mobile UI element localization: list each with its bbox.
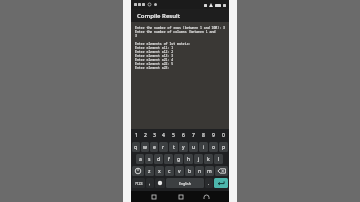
button[interactable]: 7 <box>188 131 198 140</box>
staticText: b <box>188 168 192 175</box>
button[interactable]: 1 <box>132 131 141 140</box>
button[interactable]: 2 <box>141 131 150 140</box>
button[interactable]: j <box>194 154 203 164</box>
staticText: Enter element a11: 1 <box>135 46 174 50</box>
staticText: o <box>212 144 216 151</box>
button[interactable]: t <box>169 142 178 152</box>
staticText: Compile Result <box>137 12 180 20</box>
button[interactable]: Home <box>176 192 185 201</box>
button[interactable]: z <box>145 166 154 176</box>
button[interactable]: p <box>219 142 228 152</box>
staticText: 8 <box>202 132 205 139</box>
staticText: k <box>207 156 210 163</box>
button[interactable]: x <box>155 166 164 176</box>
staticText: e <box>153 144 156 151</box>
staticText: Enter element a23: <box>135 66 170 70</box>
staticText: 7 <box>192 132 195 139</box>
button[interactable]: 5 <box>168 131 178 140</box>
button[interactable]: m <box>205 166 214 176</box>
staticText: Enter the number of columns (between 1 a… <box>135 30 226 34</box>
staticText: s <box>148 156 151 163</box>
staticText: z <box>148 168 151 175</box>
staticText: 3 <box>135 34 137 38</box>
button[interactable]: w <box>141 142 149 152</box>
button[interactable]: i <box>199 142 208 152</box>
button[interactable]: 9 <box>208 131 218 140</box>
staticText: , <box>149 180 151 187</box>
button[interactable]: r <box>159 142 168 152</box>
button[interactable]: Voice input <box>155 178 165 188</box>
button[interactable]: 0 <box>218 131 228 140</box>
button[interactable]: q <box>132 142 140 152</box>
staticText: j <box>198 156 200 163</box>
staticText: . <box>208 180 210 187</box>
staticText: Enter the number of rows (between 1 and … <box>135 26 225 30</box>
button[interactable]: Compile Result <box>131 9 229 22</box>
staticText: 4 <box>162 132 165 139</box>
staticText: Enter element a21: 4 <box>135 58 174 62</box>
staticText: u <box>192 144 196 151</box>
button[interactable]: Recent apps <box>202 192 211 201</box>
button[interactable]: v <box>175 166 184 176</box>
staticText: 5 <box>172 132 175 139</box>
staticText: g <box>177 156 181 163</box>
staticText: Enter element a22: 5 <box>135 62 174 66</box>
button[interactable]: English <box>166 178 204 188</box>
staticText: 9 <box>212 132 215 139</box>
staticText: 3 <box>153 132 156 139</box>
button[interactable]: a <box>136 154 144 164</box>
button[interactable]: Back <box>149 192 158 201</box>
staticText: Enter element a12: 2 <box>135 50 174 54</box>
staticText: y <box>182 144 185 151</box>
button[interactable]: . <box>205 178 213 188</box>
button[interactable]: Enter the number of rows (between 1 and … <box>131 22 229 129</box>
button[interactable]: d <box>154 154 163 164</box>
button[interactable]: , <box>146 178 154 188</box>
staticText: a <box>139 156 142 163</box>
staticText: l <box>218 156 220 163</box>
staticText: 2 <box>144 132 147 139</box>
staticText: r <box>162 144 165 151</box>
staticText: x <box>158 168 161 175</box>
staticText: p <box>222 144 226 151</box>
staticText: Enter elements of 1st matrix: <box>135 42 191 46</box>
staticText: Enter element a13: 3 <box>135 54 174 58</box>
staticText: 6 <box>182 132 185 139</box>
staticText: t <box>173 144 175 151</box>
staticText: i <box>203 144 205 151</box>
staticText: 1 <box>135 132 138 139</box>
staticText: English <box>179 181 191 186</box>
button[interactable]: g <box>174 154 183 164</box>
button[interactable]: ?123 <box>132 178 145 188</box>
button[interactable]: c <box>165 166 174 176</box>
button[interactable]: b <box>185 166 194 176</box>
staticText: h <box>187 156 191 163</box>
button[interactable]: f <box>164 154 173 164</box>
staticText: n <box>198 168 202 175</box>
staticText: w <box>143 144 147 151</box>
staticText: m <box>207 168 212 175</box>
staticText: d <box>157 156 161 163</box>
button[interactable]: Backspace <box>215 166 228 176</box>
staticText: f <box>168 156 170 163</box>
button[interactable]: 4 <box>159 131 168 140</box>
button[interactable]: Enter <box>214 178 228 188</box>
button[interactable]: 3 <box>150 131 159 140</box>
staticText: ?123 <box>135 181 143 186</box>
staticText: 0 <box>222 132 225 139</box>
staticText: c <box>168 168 171 175</box>
button[interactable]: o <box>209 142 218 152</box>
button[interactable]: l <box>214 154 223 164</box>
button[interactable]: u <box>189 142 198 152</box>
button[interactable]: Shift <box>132 166 144 176</box>
button[interactable]: s <box>145 154 153 164</box>
button[interactable]: k <box>204 154 213 164</box>
button[interactable]: n <box>195 166 204 176</box>
staticText: v <box>178 168 181 175</box>
button[interactable]: h <box>184 154 193 164</box>
button[interactable]: 6 <box>178 131 188 140</box>
button[interactable]: 8 <box>198 131 208 140</box>
button[interactable]: y <box>179 142 188 152</box>
staticText: q <box>134 144 138 151</box>
button[interactable]: e <box>150 142 158 152</box>
